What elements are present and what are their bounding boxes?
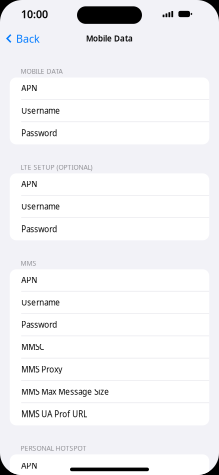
button[interactable]: APN xyxy=(10,173,209,196)
staticText: MMS Max Message Size xyxy=(21,386,109,397)
button[interactable]: APN xyxy=(10,269,209,292)
button[interactable]: MMS Proxy xyxy=(10,358,209,381)
staticText: LTE SETUP (OPTIONAL) xyxy=(21,163,93,172)
staticText: PERSONAL HOTSPOT xyxy=(21,444,87,453)
staticText: APN xyxy=(21,83,37,94)
staticText: MMS Proxy xyxy=(21,364,62,375)
staticText: Back xyxy=(16,31,40,46)
staticText: MMS UA Prof URL xyxy=(21,409,87,419)
staticText: 10:00 xyxy=(21,7,48,21)
staticText: APN xyxy=(21,460,37,471)
staticText: APN xyxy=(21,179,37,189)
button[interactable]: MMS Max Message Size xyxy=(10,381,209,403)
button[interactable]: Password xyxy=(10,122,209,144)
staticText: Username xyxy=(21,201,60,212)
button[interactable]: Back xyxy=(0,27,40,50)
staticText: Password xyxy=(21,128,57,138)
button[interactable]: Username xyxy=(10,100,209,122)
staticText: APN xyxy=(21,275,37,285)
staticText: MMS xyxy=(21,259,37,267)
button[interactable]: APN xyxy=(10,77,209,100)
staticText: Username xyxy=(21,297,60,308)
staticText: MOBILE DATA xyxy=(21,67,63,76)
button[interactable]: Password xyxy=(10,314,209,336)
staticText: Username xyxy=(21,105,60,116)
staticText: Password xyxy=(21,319,57,330)
button[interactable]: MMS UA Prof URL xyxy=(10,403,209,425)
staticText: Password xyxy=(21,224,57,234)
staticText: MMSC xyxy=(21,342,44,352)
button[interactable]: Username xyxy=(10,196,209,218)
staticText: Mobile Data xyxy=(86,33,133,44)
button[interactable]: MMSC xyxy=(10,336,209,358)
button[interactable]: Username xyxy=(10,292,209,314)
button[interactable]: Password xyxy=(10,218,209,240)
button[interactable]: APN xyxy=(10,454,209,475)
